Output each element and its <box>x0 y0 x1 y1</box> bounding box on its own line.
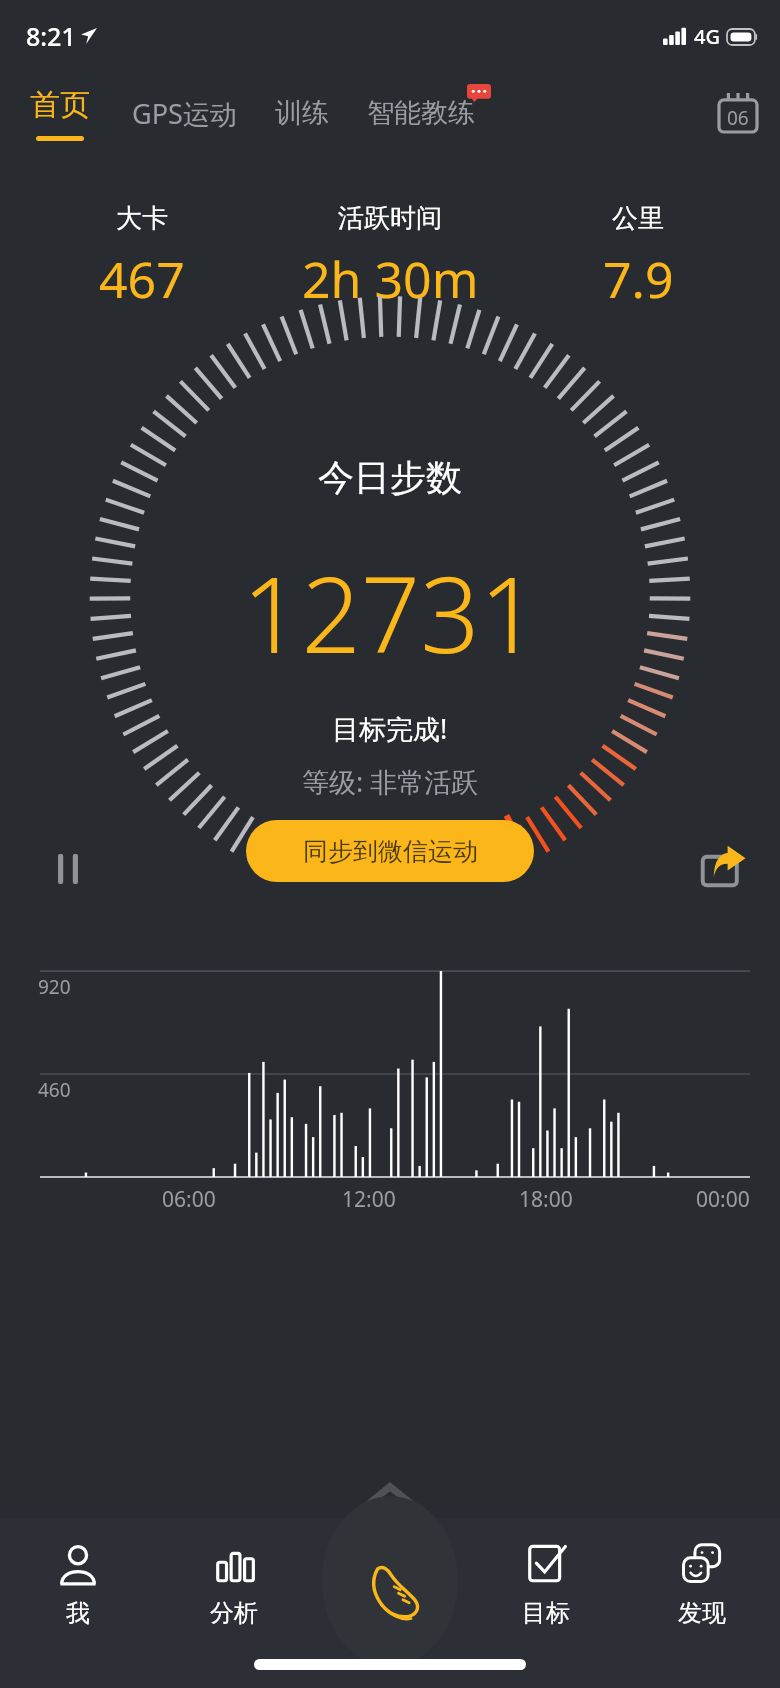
staticText: 12:00 <box>342 1185 396 1214</box>
staticText: 训练 <box>275 96 329 130</box>
staticText: 18:00 <box>519 1185 573 1214</box>
button[interactable]: 公里 <box>514 202 762 313</box>
staticText: 分析 <box>210 1598 258 1628</box>
staticText: 目标 <box>522 1598 570 1628</box>
staticText: 7.9 <box>603 245 674 313</box>
button[interactable]: 我 <box>0 1536 156 1628</box>
staticText: 00:00 <box>696 1185 750 1214</box>
button[interactable]: Steps <box>312 1536 468 1644</box>
staticText: 公里 <box>612 202 664 235</box>
staticText: 06 <box>727 105 749 131</box>
staticText: GPS运动 <box>132 95 237 132</box>
button[interactable]: 分析 <box>156 1536 312 1628</box>
staticText: 2h 30m <box>302 245 479 313</box>
staticText: 等级: 非常活跃 <box>302 763 479 800</box>
staticText: 活跃时间 <box>338 202 442 235</box>
staticText: 8:21 <box>26 19 76 53</box>
staticText: 920 <box>38 974 71 1000</box>
button[interactable]: GPS运动 <box>132 95 237 132</box>
staticText: 460 <box>38 1077 71 1103</box>
staticText: 智能教练 <box>367 96 475 130</box>
button[interactable]: Share <box>694 837 752 895</box>
button[interactable]: 活跃时间 <box>266 202 514 313</box>
button[interactable]: 智能教练 <box>367 96 475 130</box>
button[interactable]: Pause <box>46 847 90 891</box>
button[interactable]: 训练 <box>275 96 329 130</box>
button[interactable]: 大卡 <box>18 202 266 313</box>
staticText: 12731 <box>242 542 539 684</box>
button[interactable]: 发现 <box>624 1536 780 1628</box>
staticText: 06:00 <box>162 1185 216 1214</box>
staticText: 目标完成! <box>332 710 448 747</box>
button[interactable]: 同步到微信运动 <box>246 820 534 882</box>
staticText: 首页 <box>30 86 90 124</box>
button[interactable]: 首页 <box>28 72 92 154</box>
staticText: 同步到微信运动 <box>303 836 478 867</box>
button[interactable]: Calendar <box>716 91 760 135</box>
staticText: 我 <box>66 1598 90 1628</box>
staticText: 发现 <box>678 1598 726 1628</box>
button[interactable]: 目标 <box>468 1536 624 1628</box>
staticText: 467 <box>99 245 185 313</box>
staticText: 大卡 <box>116 202 168 235</box>
staticText: 4G <box>694 23 720 50</box>
staticText: 今日步数 <box>318 455 462 500</box>
